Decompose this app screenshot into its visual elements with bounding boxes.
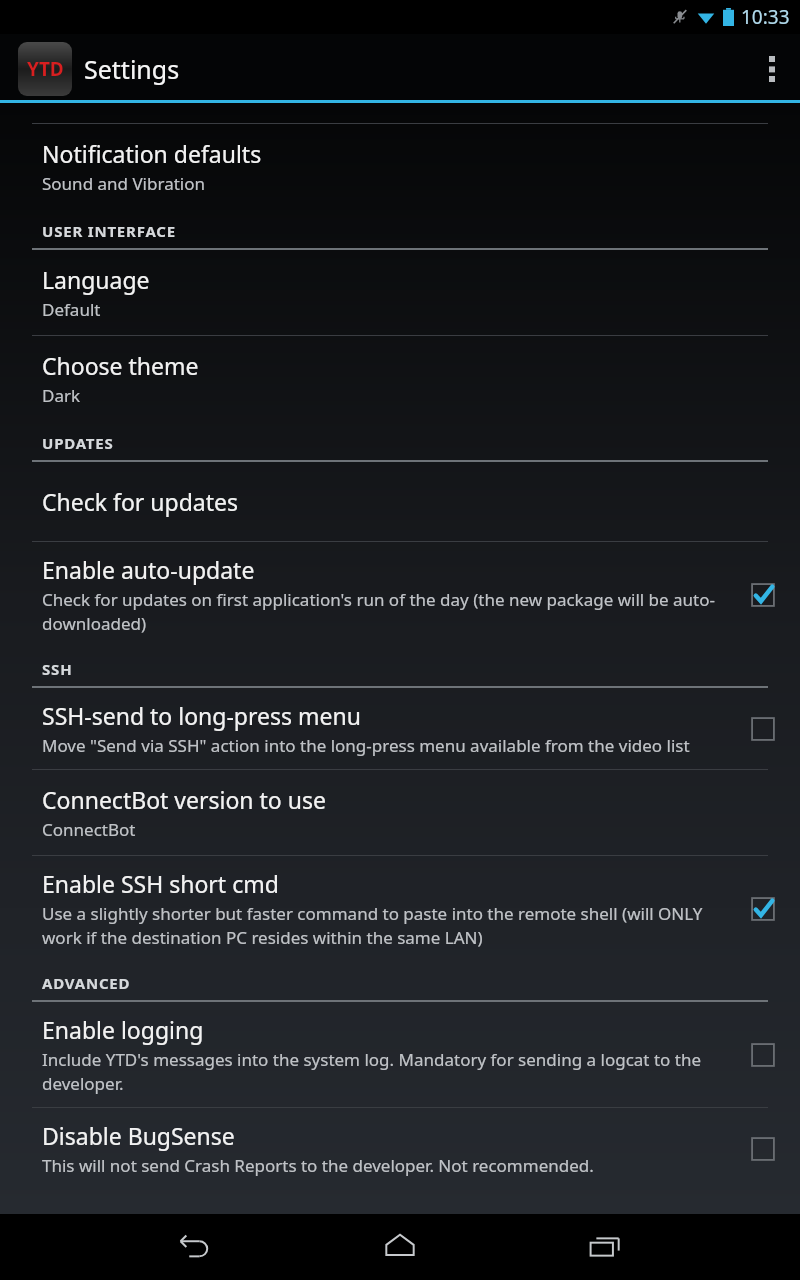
button[interactable]: Notification defaults <box>0 124 800 209</box>
staticText: Check for updates on first application's… <box>42 588 736 635</box>
staticText: YTD <box>27 56 64 82</box>
staticText: This will not send Crash Reports to the … <box>42 1154 594 1177</box>
button[interactable]: More options <box>744 34 800 103</box>
staticText: ADVANCED <box>42 973 131 993</box>
button[interactable]: Back <box>163 1215 227 1279</box>
staticText: Move "Send via SSH" action into the long… <box>42 734 690 757</box>
staticText: Enable SSH short cmd <box>42 868 279 899</box>
staticText: Notification defaults <box>42 138 262 169</box>
button[interactable]: Disable BugSense <box>0 1108 800 1189</box>
button[interactable]: SSH-send to long-press menu <box>0 688 800 769</box>
button[interactable]: Language <box>0 250 800 335</box>
button[interactable]: ConnectBot version to use <box>0 770 800 855</box>
staticText: Disable BugSense <box>42 1120 235 1151</box>
staticText: Check for updates <box>42 486 239 517</box>
button[interactable]: Recent apps <box>573 1215 637 1279</box>
staticText: ConnectBot version to use <box>42 784 326 815</box>
button[interactable]: Check for updates <box>0 462 800 541</box>
staticText: ConnectBot <box>42 818 136 841</box>
button[interactable]: Enable SSH short cmd <box>0 856 800 961</box>
staticText: Dark <box>42 384 81 407</box>
button[interactable]: Enable logging <box>0 1002 800 1107</box>
staticText: SSH <box>42 659 73 679</box>
staticText: Choose theme <box>42 350 199 381</box>
staticText: Use a slightly shorter but faster comman… <box>42 902 736 949</box>
staticText: Default <box>42 298 101 321</box>
button[interactable]: App icon <box>18 42 72 96</box>
staticText: USER INTERFACE <box>42 221 176 241</box>
staticText: Enable auto-update <box>42 554 255 585</box>
staticText: Language <box>42 264 150 295</box>
staticText: Sound and Vibration <box>42 172 205 195</box>
staticText: Settings <box>84 52 180 86</box>
staticText: Include YTD's messages into the system l… <box>42 1048 736 1095</box>
staticText: SSH-send to long-press menu <box>42 700 361 731</box>
button[interactable]: Home <box>368 1215 432 1279</box>
button[interactable]: Choose theme <box>0 336 800 421</box>
staticText: Enable logging <box>42 1014 204 1045</box>
staticText: UPDATES <box>42 433 114 453</box>
staticText: 10:33 <box>741 4 790 30</box>
button[interactable]: Enable auto-update <box>0 542 800 647</box>
